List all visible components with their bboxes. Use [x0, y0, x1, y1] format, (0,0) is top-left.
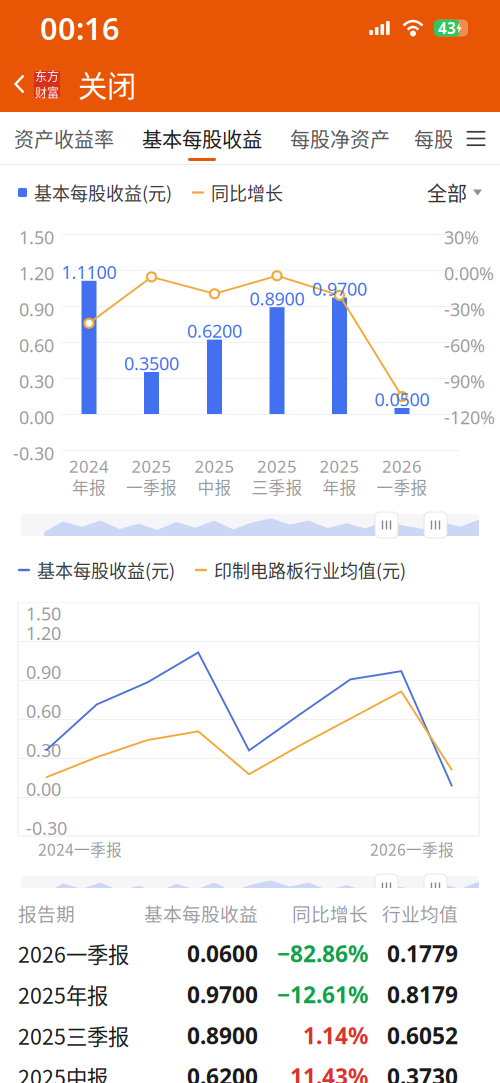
- staticText: 每股净资产: [290, 124, 390, 153]
- staticText: 0.90: [19, 297, 54, 321]
- button[interactable]: 全部: [427, 172, 482, 213]
- staticText: 关闭: [78, 63, 136, 105]
- staticText: 0.00: [19, 405, 54, 429]
- staticText: 1.20: [19, 261, 54, 285]
- button[interactable]: 关闭: [64, 56, 150, 112]
- staticText: 0.90: [26, 660, 61, 684]
- staticText: 印制电路板行业均值(元): [214, 557, 406, 583]
- staticText: -30%: [444, 297, 485, 321]
- button[interactable]: All tabs: [452, 112, 500, 165]
- staticText: 2025年报: [18, 979, 108, 1010]
- staticText: 基本每股收益(元): [34, 179, 172, 206]
- staticText: 一季报: [126, 475, 177, 499]
- staticText: 0.30: [19, 369, 54, 393]
- staticText: 东方: [35, 67, 59, 84]
- staticText: 三季报: [251, 475, 302, 499]
- staticText: 2025: [319, 455, 359, 478]
- staticText: 同比增长: [211, 179, 283, 206]
- staticText: 1.20: [26, 621, 61, 645]
- staticText: 0.9700: [312, 277, 367, 301]
- staticText: 同比增长: [292, 899, 368, 926]
- staticText: 11.43%: [290, 1061, 368, 1083]
- button[interactable]: 资产收益率: [0, 112, 128, 165]
- staticText: 0.30: [26, 738, 61, 762]
- staticText: 0.6200: [187, 319, 242, 343]
- staticText: 0.3500: [124, 351, 179, 375]
- staticText: 00:16: [40, 7, 120, 49]
- staticText: 0.3730: [387, 1061, 458, 1083]
- staticText: 2024一季报: [38, 838, 122, 860]
- staticText: −82.86%: [277, 938, 368, 969]
- staticText: 基本每股收益(元): [37, 557, 175, 583]
- staticText: 中报: [197, 475, 231, 499]
- staticText: -0.30: [26, 816, 67, 840]
- staticText: -90%: [444, 369, 485, 393]
- staticText: 报告期: [18, 899, 75, 926]
- staticText: 行业均值: [382, 899, 458, 926]
- staticText: 2025中报: [18, 1061, 108, 1083]
- staticText: -0.30: [13, 441, 54, 465]
- staticText: 0.6200: [187, 1061, 258, 1083]
- staticText: -120%: [444, 405, 495, 429]
- staticText: 0.8179: [387, 979, 458, 1010]
- staticText: 0.8900: [187, 1020, 258, 1051]
- staticText: 2026一季报: [370, 838, 454, 860]
- staticText: 1.1100: [61, 260, 116, 284]
- staticText: 1.50: [19, 225, 54, 249]
- staticText: −12.61%: [277, 979, 368, 1010]
- button[interactable]: 每股净资产: [276, 112, 404, 165]
- staticText: 2024: [69, 455, 109, 478]
- staticText: 1.14%: [303, 1020, 368, 1051]
- staticText: 2026: [382, 455, 422, 478]
- staticText: 2026一季报: [18, 938, 129, 969]
- staticText: 财富: [35, 83, 59, 101]
- staticText: 年报: [322, 475, 356, 499]
- staticText: 0.9700: [187, 979, 258, 1010]
- staticText: 2025: [194, 455, 234, 478]
- button[interactable]: 基本每股收益: [128, 112, 276, 165]
- staticText: 0.00: [26, 777, 61, 801]
- staticText: 0.60: [26, 699, 61, 723]
- button[interactable]: Back: [0, 56, 64, 112]
- staticText: -60%: [444, 333, 485, 357]
- staticText: 0.1779: [387, 938, 458, 969]
- staticText: 0.60: [19, 333, 54, 357]
- staticText: 0.00%: [444, 261, 494, 285]
- staticText: 43: [438, 18, 456, 38]
- staticText: 30%: [444, 225, 479, 249]
- staticText: 1.50: [26, 601, 61, 626]
- staticText: 全部: [427, 178, 467, 207]
- staticText: 一季报: [376, 475, 427, 499]
- staticText: 年报: [72, 475, 106, 499]
- staticText: 0.6052: [387, 1020, 458, 1051]
- staticText: 0.8900: [249, 286, 304, 311]
- staticText: 资产收益率: [14, 124, 114, 153]
- staticText: 2025: [131, 455, 171, 478]
- button[interactable]: 每股净: [404, 112, 474, 165]
- staticText: 2025: [257, 455, 297, 478]
- staticText: 0.0600: [187, 938, 258, 969]
- staticText: 0.0500: [374, 387, 429, 411]
- staticText: 基本每股收益: [142, 124, 262, 153]
- staticText: 每股净: [414, 124, 474, 153]
- staticText: 基本每股收益: [144, 899, 258, 926]
- staticText: 2025三季报: [18, 1020, 129, 1051]
